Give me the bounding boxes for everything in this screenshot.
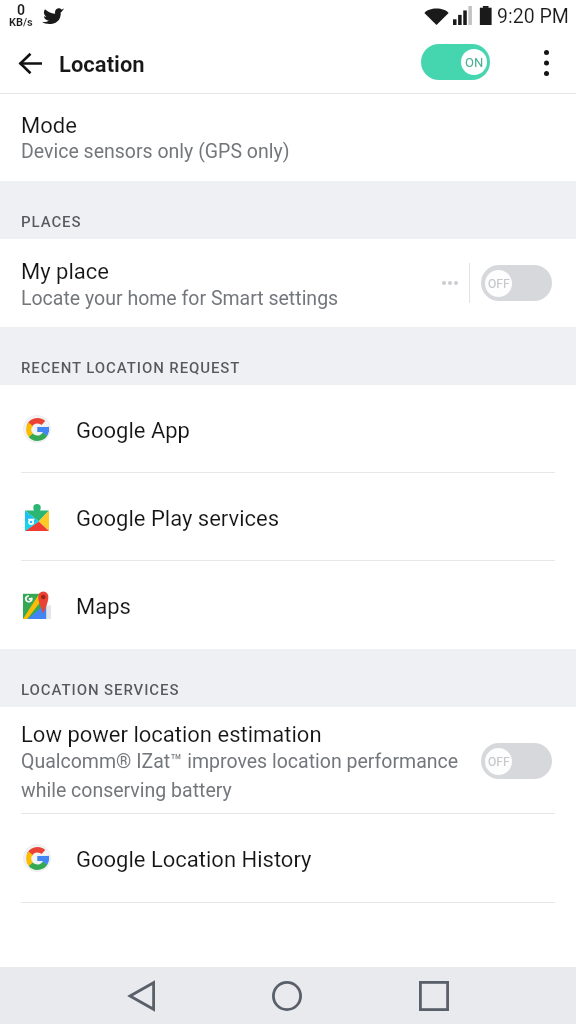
button[interactable]: Mode (0, 94, 576, 181)
staticText: Maps (76, 594, 131, 620)
button[interactable]: Navigate up (10, 42, 52, 84)
staticText: My place (21, 259, 109, 285)
button[interactable]: Home (259, 968, 315, 1024)
staticText: Google App (76, 418, 190, 444)
staticText: Locate your home for Smart settings (21, 287, 339, 310)
staticText: Google Play services (76, 506, 280, 532)
button[interactable]: Recent apps (406, 968, 462, 1024)
staticText: Device sensors only (GPS only) (21, 140, 290, 163)
button[interactable]: My place (0, 239, 576, 327)
staticText: Low power location estimation (21, 722, 322, 748)
button[interactable]: More (435, 263, 465, 303)
staticText: RECENT LOCATION REQUEST (21, 359, 241, 377)
staticText: OFF (488, 755, 510, 769)
staticText: KB/s (9, 16, 33, 29)
staticText: Qualcomm® IZat™ improves location perfor… (21, 750, 459, 773)
staticText: Mode (21, 113, 77, 139)
staticText: PLACES (21, 213, 82, 231)
staticText: while conserving battery (21, 779, 232, 802)
button[interactable]: Google App (0, 385, 576, 472)
button[interactable]: More options (525, 42, 567, 84)
staticText: ON (465, 55, 484, 70)
button[interactable]: Google Play services (0, 473, 576, 560)
staticText: 0 (17, 2, 26, 18)
staticText: Google Location History (76, 847, 312, 873)
staticText: LOCATION SERVICES (21, 681, 180, 699)
button[interactable]: Low power location estimation (0, 707, 576, 813)
button[interactable]: Off (481, 743, 552, 779)
button[interactable]: Maps (0, 561, 576, 649)
staticText: 9:20 PM (497, 5, 569, 28)
staticText: Location (59, 52, 145, 78)
button[interactable]: Location on (421, 44, 490, 80)
button[interactable]: Back (113, 968, 169, 1024)
button[interactable]: Off (481, 265, 552, 301)
staticText: OFF (488, 277, 510, 291)
button[interactable]: Google Location History (0, 814, 576, 902)
